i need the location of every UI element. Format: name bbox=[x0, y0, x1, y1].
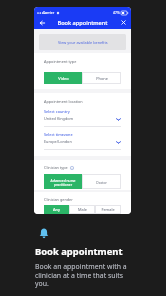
staticText: Any bbox=[53, 207, 60, 212]
button[interactable]: Select timezone bbox=[44, 132, 121, 150]
button[interactable]: Phone bbox=[82, 72, 121, 84]
button[interactable]: Female bbox=[95, 205, 121, 214]
staticText: Book appointment bbox=[35, 245, 123, 258]
staticText: Select country bbox=[44, 109, 70, 114]
staticText: Carrier bbox=[43, 10, 55, 15]
staticText: Book appointment bbox=[48, 19, 117, 27]
staticText: Appointment location bbox=[44, 99, 83, 104]
button[interactable]: Doctor bbox=[82, 174, 121, 189]
staticText: Phone bbox=[96, 76, 108, 81]
button[interactable]: Advanced nurse practitioner bbox=[44, 174, 82, 189]
staticText: Clinician gender bbox=[44, 197, 73, 202]
button[interactable]: Close bbox=[117, 16, 131, 29]
staticText: Female bbox=[101, 207, 115, 212]
button[interactable]: Back bbox=[34, 16, 48, 29]
staticText: Europe/London bbox=[44, 139, 72, 144]
staticText: United Kingdom bbox=[44, 116, 74, 121]
staticText: 47% bbox=[113, 10, 120, 15]
button[interactable]: Any bbox=[44, 205, 69, 214]
staticText: Clinician type bbox=[44, 165, 68, 170]
staticText: Male bbox=[78, 207, 87, 212]
button[interactable]: View your available benefits bbox=[39, 34, 126, 50]
staticText: Video bbox=[58, 76, 69, 81]
staticText: Doctor bbox=[96, 180, 107, 184]
staticText: View your available benefits bbox=[58, 40, 108, 45]
button[interactable]: Male bbox=[69, 205, 95, 214]
button[interactable]: Video bbox=[44, 72, 82, 84]
button[interactable]: Select country bbox=[44, 109, 121, 127]
staticText: Advanced nurse practitioner bbox=[45, 178, 81, 186]
staticText: Select timezone bbox=[44, 132, 73, 137]
staticText: Appointment type bbox=[44, 59, 77, 64]
staticText: Book an appointment with a clinician at … bbox=[35, 262, 128, 288]
